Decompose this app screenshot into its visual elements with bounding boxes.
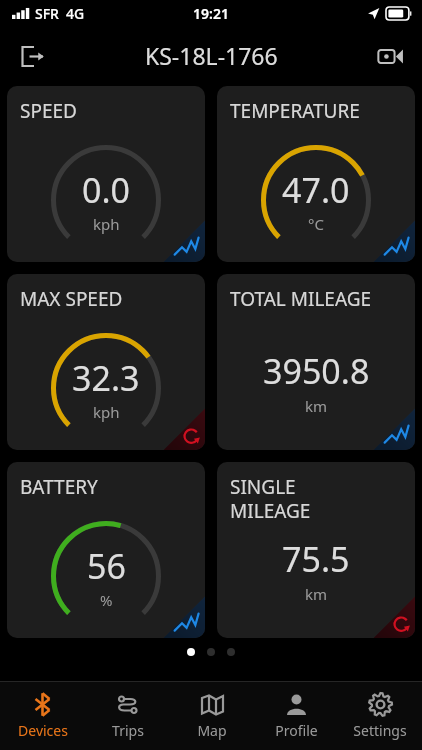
button[interactable]: Disconnect <box>8 32 56 80</box>
staticText: SFR <box>35 4 59 23</box>
staticText: km <box>305 396 328 416</box>
button[interactable]: Reset value <box>217 462 415 638</box>
staticText: % <box>100 590 113 610</box>
staticText: °C <box>308 214 324 234</box>
button[interactable]: Show history chart <box>159 592 205 638</box>
staticText: 3950.8 <box>263 348 370 394</box>
staticText: Devices <box>18 721 68 740</box>
button[interactable]: Settings <box>338 682 422 750</box>
button[interactable]: Show history chart <box>369 216 415 262</box>
staticText: TEMPERATURE <box>230 98 360 124</box>
button[interactable]: Show history chart <box>217 274 415 450</box>
button[interactable]: Show history chart <box>217 86 415 262</box>
staticText: 0.0 <box>82 167 131 213</box>
staticText: km <box>305 584 328 604</box>
staticText: SINGLE MILEAGE <box>230 474 311 523</box>
button[interactable]: Trips <box>85 682 170 750</box>
staticText: 32.3 <box>72 355 140 401</box>
staticText: KS-18L-1766 <box>145 40 278 71</box>
button[interactable]: Record video <box>366 32 414 80</box>
button[interactable]: Devices <box>0 682 85 750</box>
button[interactable]: Show history chart <box>7 86 205 262</box>
staticText: Map <box>197 721 227 740</box>
staticText: kph <box>93 402 120 422</box>
staticText: MAX SPEED <box>20 286 123 312</box>
staticText: 4G <box>66 4 85 23</box>
staticText: Settings <box>353 721 407 740</box>
button[interactable]: Reset value <box>369 592 415 638</box>
button[interactable]: Profile <box>254 682 338 750</box>
staticText: Trips <box>112 721 144 740</box>
button[interactable]: Reset value <box>159 404 205 450</box>
button[interactable]: Show history chart <box>159 216 205 262</box>
staticText: kph <box>93 214 120 234</box>
staticText: 75.5 <box>282 536 350 582</box>
staticText: BATTERY <box>20 474 98 500</box>
staticText: 47.0 <box>282 167 350 213</box>
staticText: 56 <box>87 543 126 589</box>
staticText: SPEED <box>20 98 77 124</box>
button[interactable]: Show history chart <box>7 462 205 638</box>
staticText: 19:21 <box>193 4 229 23</box>
button[interactable]: Show history chart <box>369 404 415 450</box>
staticText: TOTAL MILEAGE <box>230 286 372 312</box>
button[interactable]: Reset value <box>7 274 205 450</box>
staticText: Profile <box>275 721 318 740</box>
button[interactable]: Map <box>170 682 254 750</box>
